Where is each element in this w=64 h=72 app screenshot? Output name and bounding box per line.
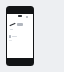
other: Compose bbox=[10, 23, 15, 26]
button[interactable] bbox=[9, 35, 25, 38]
button[interactable] bbox=[17, 23, 23, 26]
button[interactable] bbox=[7, 14, 33, 20]
